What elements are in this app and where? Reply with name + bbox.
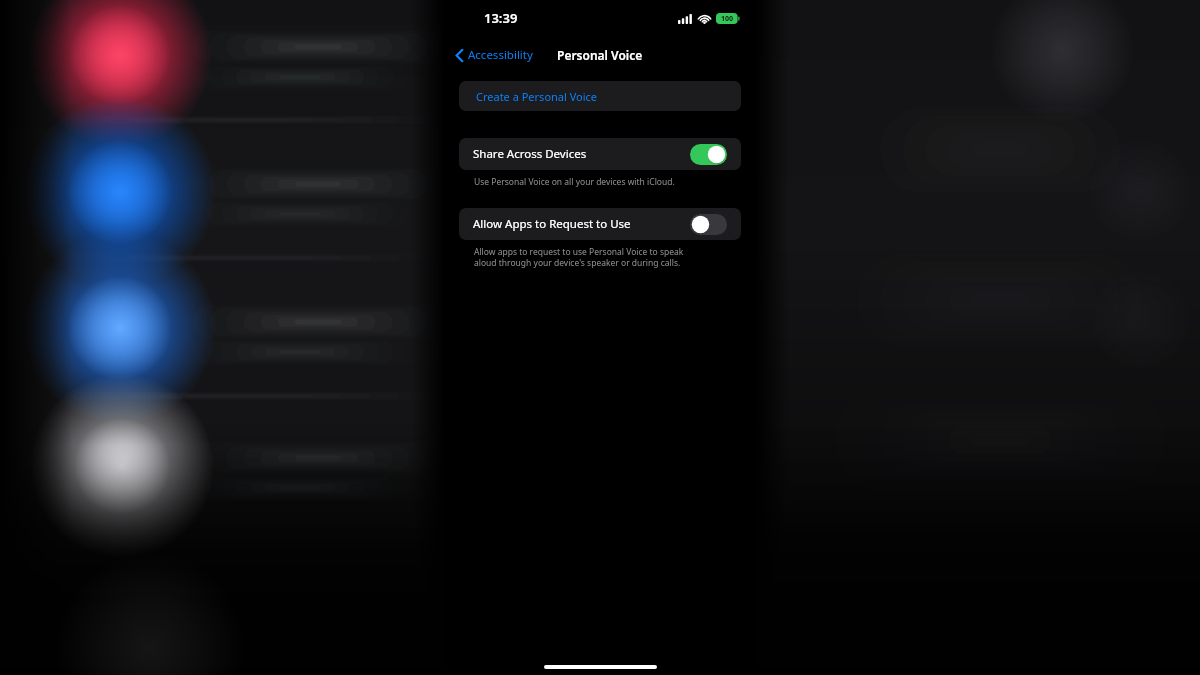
staticText: Personal Voice xyxy=(557,47,643,63)
button[interactable]: Create a Personal Voice xyxy=(459,81,741,111)
button[interactable]: Allow Apps to Request to Use xyxy=(459,208,741,240)
staticText: Allow Apps to Request to Use xyxy=(473,216,631,232)
button[interactable]: Back xyxy=(455,47,533,63)
staticText: Allow apps to request to use Personal Vo… xyxy=(474,246,684,268)
staticText: Accessibility xyxy=(468,47,533,63)
button[interactable]: Share Across Devices xyxy=(459,138,741,170)
other: On xyxy=(690,144,727,165)
staticText: 100 xyxy=(721,14,734,24)
staticText: Create a Personal Voice xyxy=(476,89,598,104)
other: Off xyxy=(690,214,727,235)
staticText: 13:39 xyxy=(484,9,518,27)
other: Back xyxy=(455,48,464,63)
staticText: Use Personal Voice on all your devices w… xyxy=(474,176,675,188)
staticText: Share Across Devices xyxy=(473,146,587,162)
